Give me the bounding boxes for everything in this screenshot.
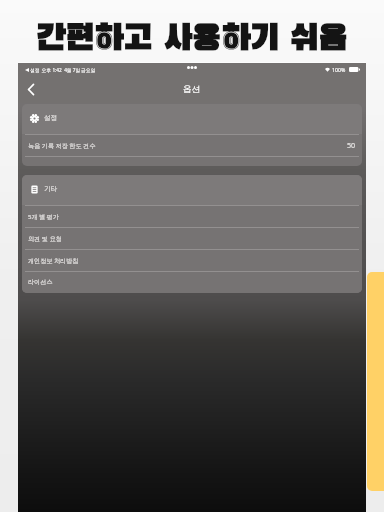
button[interactable]: Back [18,75,44,103]
staticText: 100% [332,66,346,73]
staticText: 의견 및 요청 [28,234,62,242]
staticText: 설정 [44,114,58,122]
button[interactable]: 녹음 기록 저장 한도 건수 [22,135,362,156]
staticText: 설정 오후 1:42 4월 7일 금요일 [30,67,96,73]
staticText: 간편하고 사용하기 쉬움 [36,22,348,57]
staticText: 기타 [44,185,58,193]
staticText: 5개 별 평가 [28,212,60,220]
staticText: 옵션 [183,84,201,95]
button[interactable]: 개인정보 처리방침 [22,250,362,271]
staticText: 개인정보 처리방침 [28,256,79,264]
staticText: 녹음 기록 저장 한도 건수 [28,141,96,149]
button[interactable]: 라이선스 [22,272,362,293]
staticText: 50 [347,140,356,150]
button[interactable]: 5개 별 평가 [22,206,362,227]
staticText: 라이선스 [28,278,53,286]
button[interactable]: 의견 및 요청 [22,228,362,249]
